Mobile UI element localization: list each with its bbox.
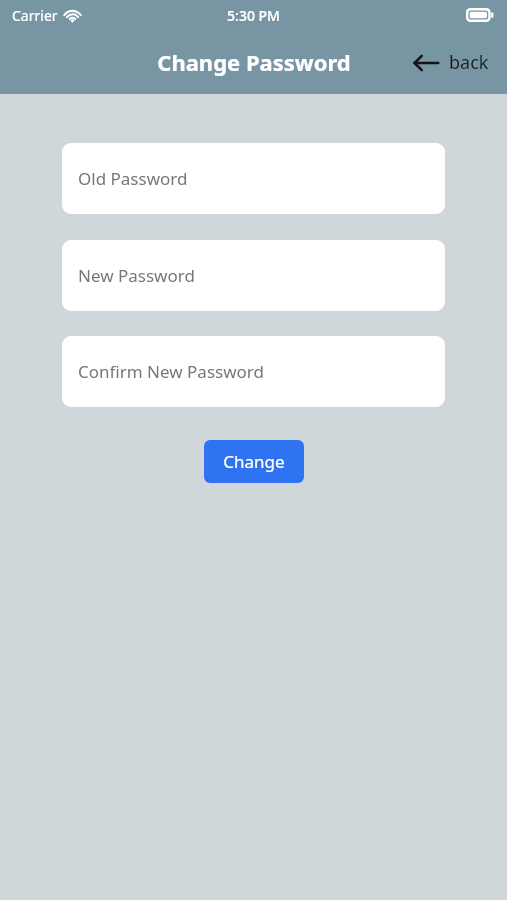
button[interactable]: Back (409, 46, 493, 79)
staticText: New Password (78, 264, 195, 287)
button[interactable]: Confirm New Password (62, 336, 445, 407)
staticText: Confirm New Password (78, 360, 264, 383)
staticText: back (449, 50, 489, 75)
button[interactable]: Old Password (62, 143, 445, 214)
staticText: Old Password (78, 167, 188, 190)
staticText: Carrier (12, 6, 58, 25)
staticText: Change (223, 450, 285, 473)
button[interactable]: Change (204, 440, 304, 483)
other: Back (413, 53, 439, 73)
button[interactable]: New Password (62, 240, 445, 311)
staticText: 5:30 PM (227, 6, 280, 25)
staticText: Change Password (157, 47, 351, 77)
